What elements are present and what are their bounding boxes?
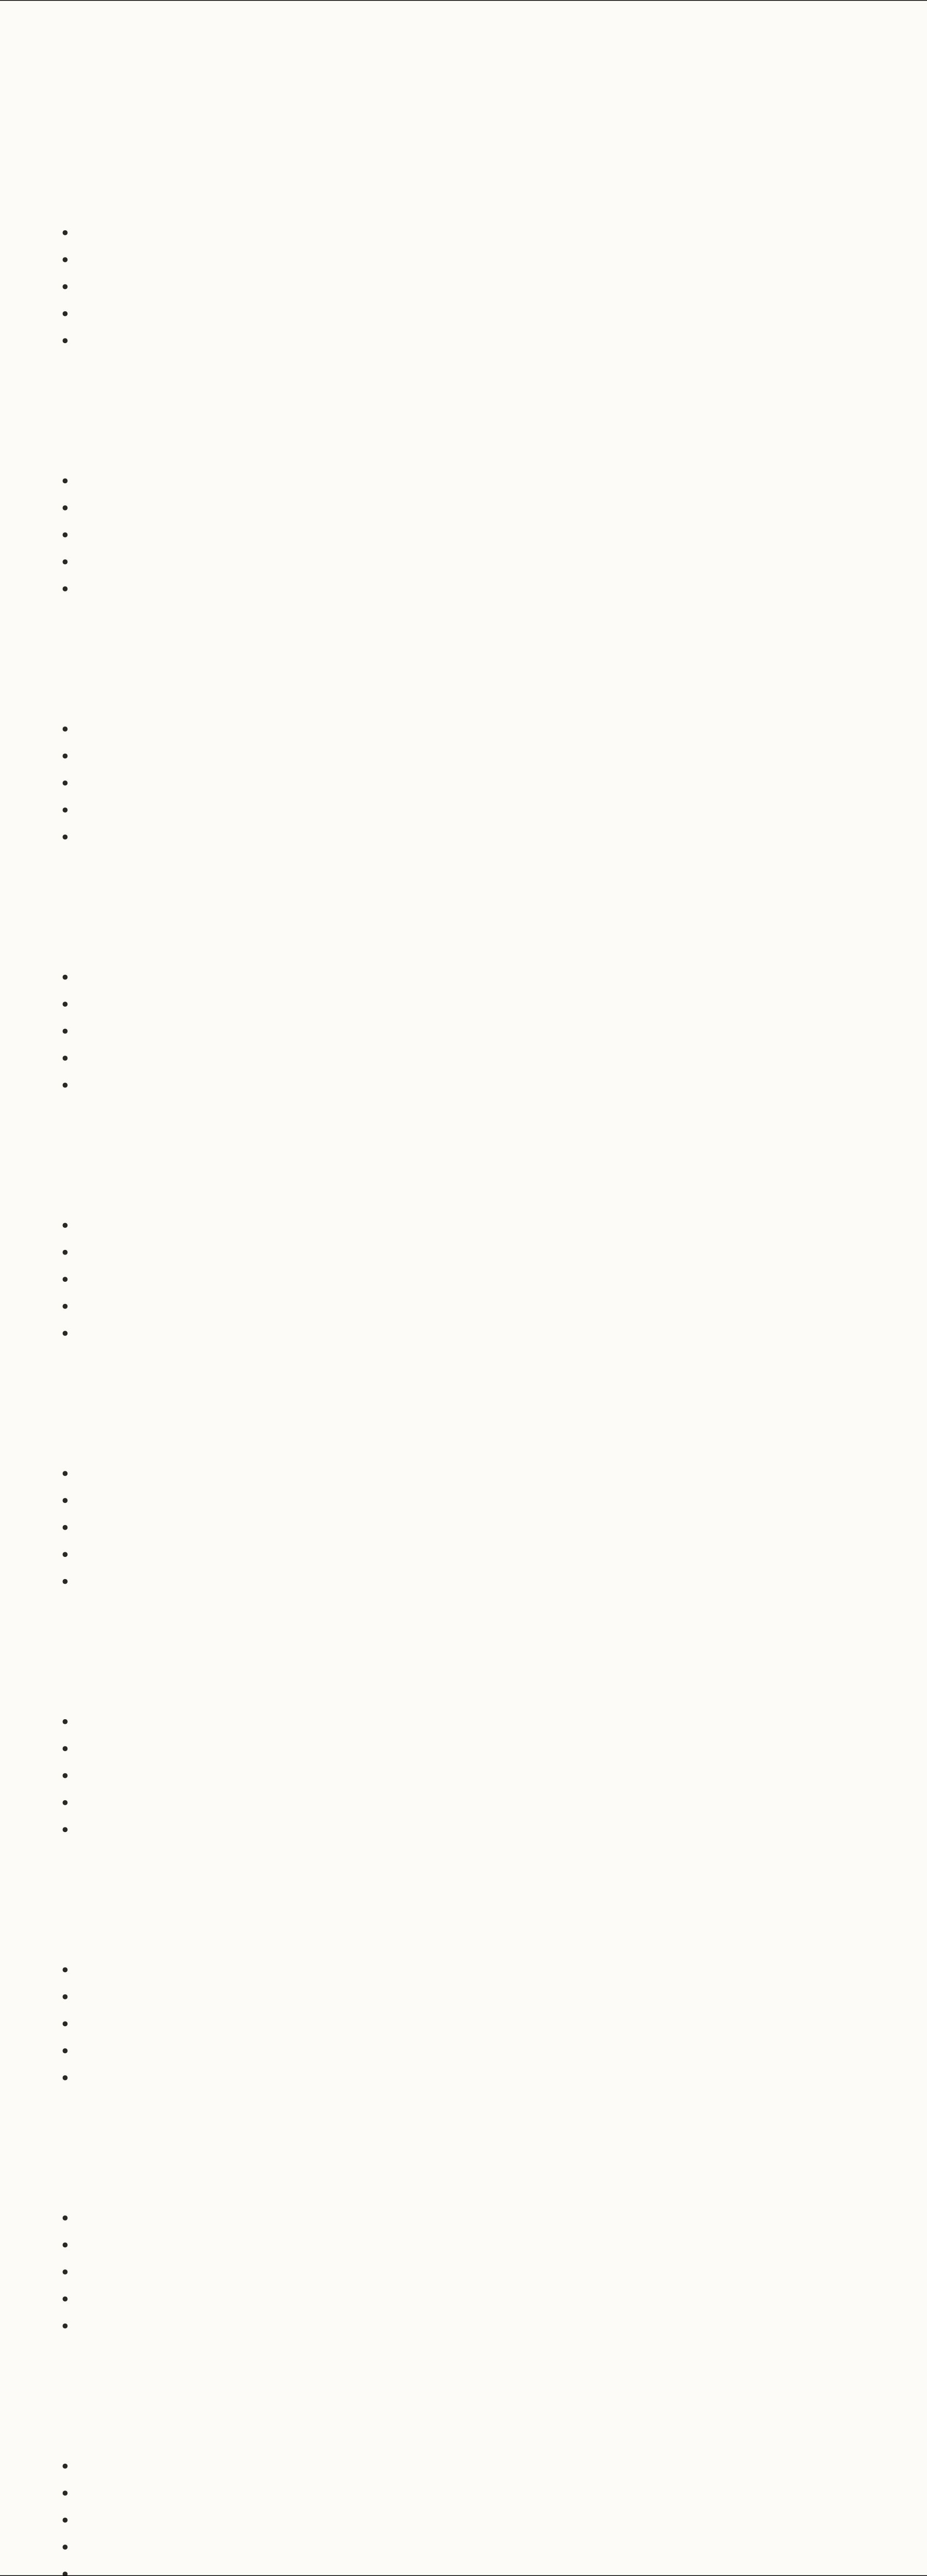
button[interactable]: Devices you have paired with the app xyxy=(63,246,875,273)
button[interactable]: Download a copy of your information xyxy=(63,1265,875,1292)
button[interactable]: Legal requests from valid authorities xyxy=(63,1017,875,1044)
button[interactable]: Encrypted storage for sensitive fields xyxy=(63,1735,875,1762)
button[interactable]: Aggregated, de-identified statistics xyxy=(63,1044,875,1071)
button[interactable]: Reports reviewed within one day xyxy=(63,2064,875,2091)
button[interactable]: Local representatives in each region xyxy=(63,2312,875,2339)
button[interactable]: Receipts for purchases made in the app xyxy=(63,575,875,602)
button[interactable]: Delete your account and all content xyxy=(63,1292,875,1319)
button[interactable]: Account details and sign-in history xyxy=(63,219,875,246)
button[interactable]: Backups are purged within one year xyxy=(63,1567,875,1594)
button[interactable]: Usage metrics from the current session xyxy=(63,494,875,521)
button[interactable]: Session logs for thirty days xyxy=(63,1460,875,1487)
button[interactable]: Content you have saved for offline use xyxy=(63,300,875,327)
button[interactable]: Crash reports for ninety days xyxy=(63,1487,875,1514)
button[interactable]: Escalate to your local authority xyxy=(63,2560,875,2576)
button[interactable]: Use the in-app support conversation xyxy=(63,2506,875,2533)
button[interactable]: Personalising the Home and Library tabs xyxy=(63,715,875,742)
button[interactable]: Approximate region, never precise locati… xyxy=(63,521,875,548)
button[interactable]: Sub-processors listed in the appendix xyxy=(63,2285,875,2312)
button[interactable]: Opt out of analytics and diagnostics xyxy=(63,1238,875,1265)
button[interactable]: Least-privilege access for employees xyxy=(63,1816,875,1843)
button[interactable]: Manage notification preferences xyxy=(63,1319,875,1346)
button[interactable]: Preferences you have chosen in Settings xyxy=(63,273,875,300)
button[interactable]: Turn off personalised recommendations xyxy=(63,1211,875,1238)
button[interactable]: A merger, acquisition or asset sale xyxy=(63,1071,875,1098)
button[interactable]: Regular independent security reviews xyxy=(63,1789,875,1816)
button[interactable]: No accounts for users under thirteen xyxy=(63,1956,875,1983)
button[interactable]: Hardware-backed keys where available xyxy=(63,1762,875,1789)
button[interactable]: Purchase records as required by law xyxy=(63,1514,875,1540)
button[interactable]: Syncing your library across devices xyxy=(63,742,875,769)
button[interactable]: Transfer impact assessments on file xyxy=(63,2258,875,2285)
button[interactable]: Age-appropriate content filtering xyxy=(63,2010,875,2037)
button[interactable]: Contact details such as name and email xyxy=(63,467,875,494)
button[interactable]: Payment processors for transactions xyxy=(63,990,875,1017)
button[interactable]: Crash reports and performance traces xyxy=(63,548,875,575)
button[interactable]: Family Sharing controls are honoured xyxy=(63,1983,875,2010)
button[interactable]: Responding to support requests faster xyxy=(63,823,875,850)
button[interactable]: Write to the registered office address xyxy=(63,2479,875,2506)
button[interactable]: Regional storage where law requires it xyxy=(63,2231,875,2258)
button[interactable]: Detecting fraud and abusive behaviour xyxy=(63,769,875,796)
button[interactable]: Transport encryption on every request xyxy=(63,1708,875,1735)
button[interactable]: Service providers bound by contract xyxy=(63,963,875,990)
button[interactable]: Diagnostics you have opted in to share xyxy=(63,327,875,354)
button[interactable]: Measuring which features get used xyxy=(63,796,875,823)
button[interactable]: Parental approval for purchases xyxy=(63,2037,875,2064)
button[interactable]: Email the privacy team directly xyxy=(63,2452,875,2479)
button[interactable]: Standard contractual clauses apply xyxy=(63,2204,875,2231)
button[interactable]: Library contents until you remove them xyxy=(63,1540,875,1567)
button[interactable]: Reach the data protection officer xyxy=(63,2533,875,2560)
